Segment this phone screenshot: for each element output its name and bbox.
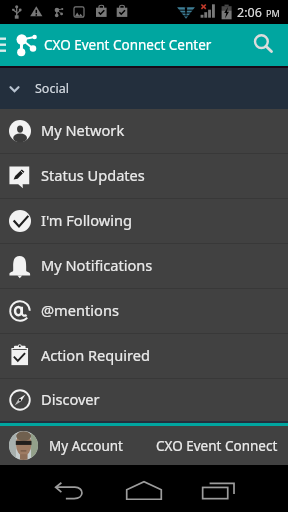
button[interactable]: I'm Following	[0, 199, 288, 243]
button[interactable]: My Account	[0, 426, 156, 465]
button[interactable]: Status Updates	[0, 154, 288, 198]
staticText: 2:06	[237, 4, 262, 21]
staticText: My Network	[41, 120, 125, 140]
button[interactable]: Recent apps	[194, 467, 242, 512]
button[interactable]: Home	[120, 467, 168, 512]
button[interactable]: Search	[243, 24, 285, 66]
staticText: I'm Following	[41, 210, 132, 230]
button[interactable]: Action Required	[0, 334, 288, 378]
button[interactable]: Discover	[0, 379, 288, 421]
button[interactable]: Social	[0, 68, 288, 109]
staticText: Social	[35, 80, 69, 97]
button[interactable]: CXO Event Connect	[156, 426, 288, 465]
button[interactable]: Open navigation drawer	[0, 24, 10, 66]
staticText: My Notifications	[41, 255, 153, 275]
staticText: CXO Event Connect	[156, 437, 278, 455]
staticText: Status Updates	[41, 165, 145, 185]
button[interactable]: My Network	[0, 109, 288, 153]
staticText: My Account	[49, 437, 123, 455]
button[interactable]: My Notifications	[0, 244, 288, 288]
staticText: @mentions	[41, 300, 119, 320]
staticText: PM	[266, 7, 280, 19]
staticText: CXO Event Connect Center	[44, 36, 212, 54]
staticText: Discover	[41, 389, 100, 409]
staticText: Action Required	[41, 345, 151, 365]
button[interactable]: Back	[47, 467, 95, 512]
button[interactable]: @mentions	[0, 289, 288, 333]
